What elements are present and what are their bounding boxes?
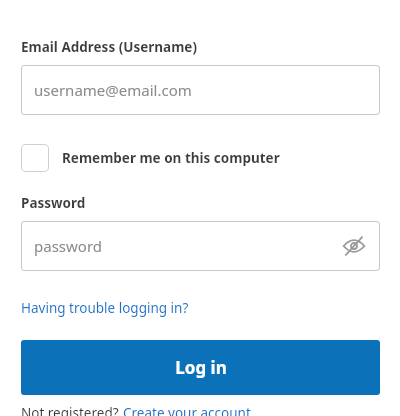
staticText: username@email.com — [34, 80, 192, 100]
staticText: Password — [21, 194, 86, 212]
button[interactable]: Log in — [21, 340, 380, 395]
button[interactable]: username@email.com — [21, 65, 380, 115]
staticText: password — [34, 236, 102, 256]
staticText: Create your account — [123, 404, 251, 416]
staticText: Log in — [175, 356, 227, 379]
button[interactable]: password — [21, 221, 380, 271]
button[interactable]: Create your account — [123, 404, 251, 416]
button[interactable]: Having trouble logging in? — [21, 299, 189, 317]
staticText: Having trouble logging in? — [21, 299, 189, 317]
button[interactable]: Show password — [338, 230, 370, 262]
button[interactable]: Remember me on this computer — [21, 144, 280, 172]
staticText: Email Address (Username) — [21, 38, 197, 56]
staticText: Not registered? — [21, 404, 123, 416]
staticText: Remember me on this computer — [62, 149, 280, 167]
